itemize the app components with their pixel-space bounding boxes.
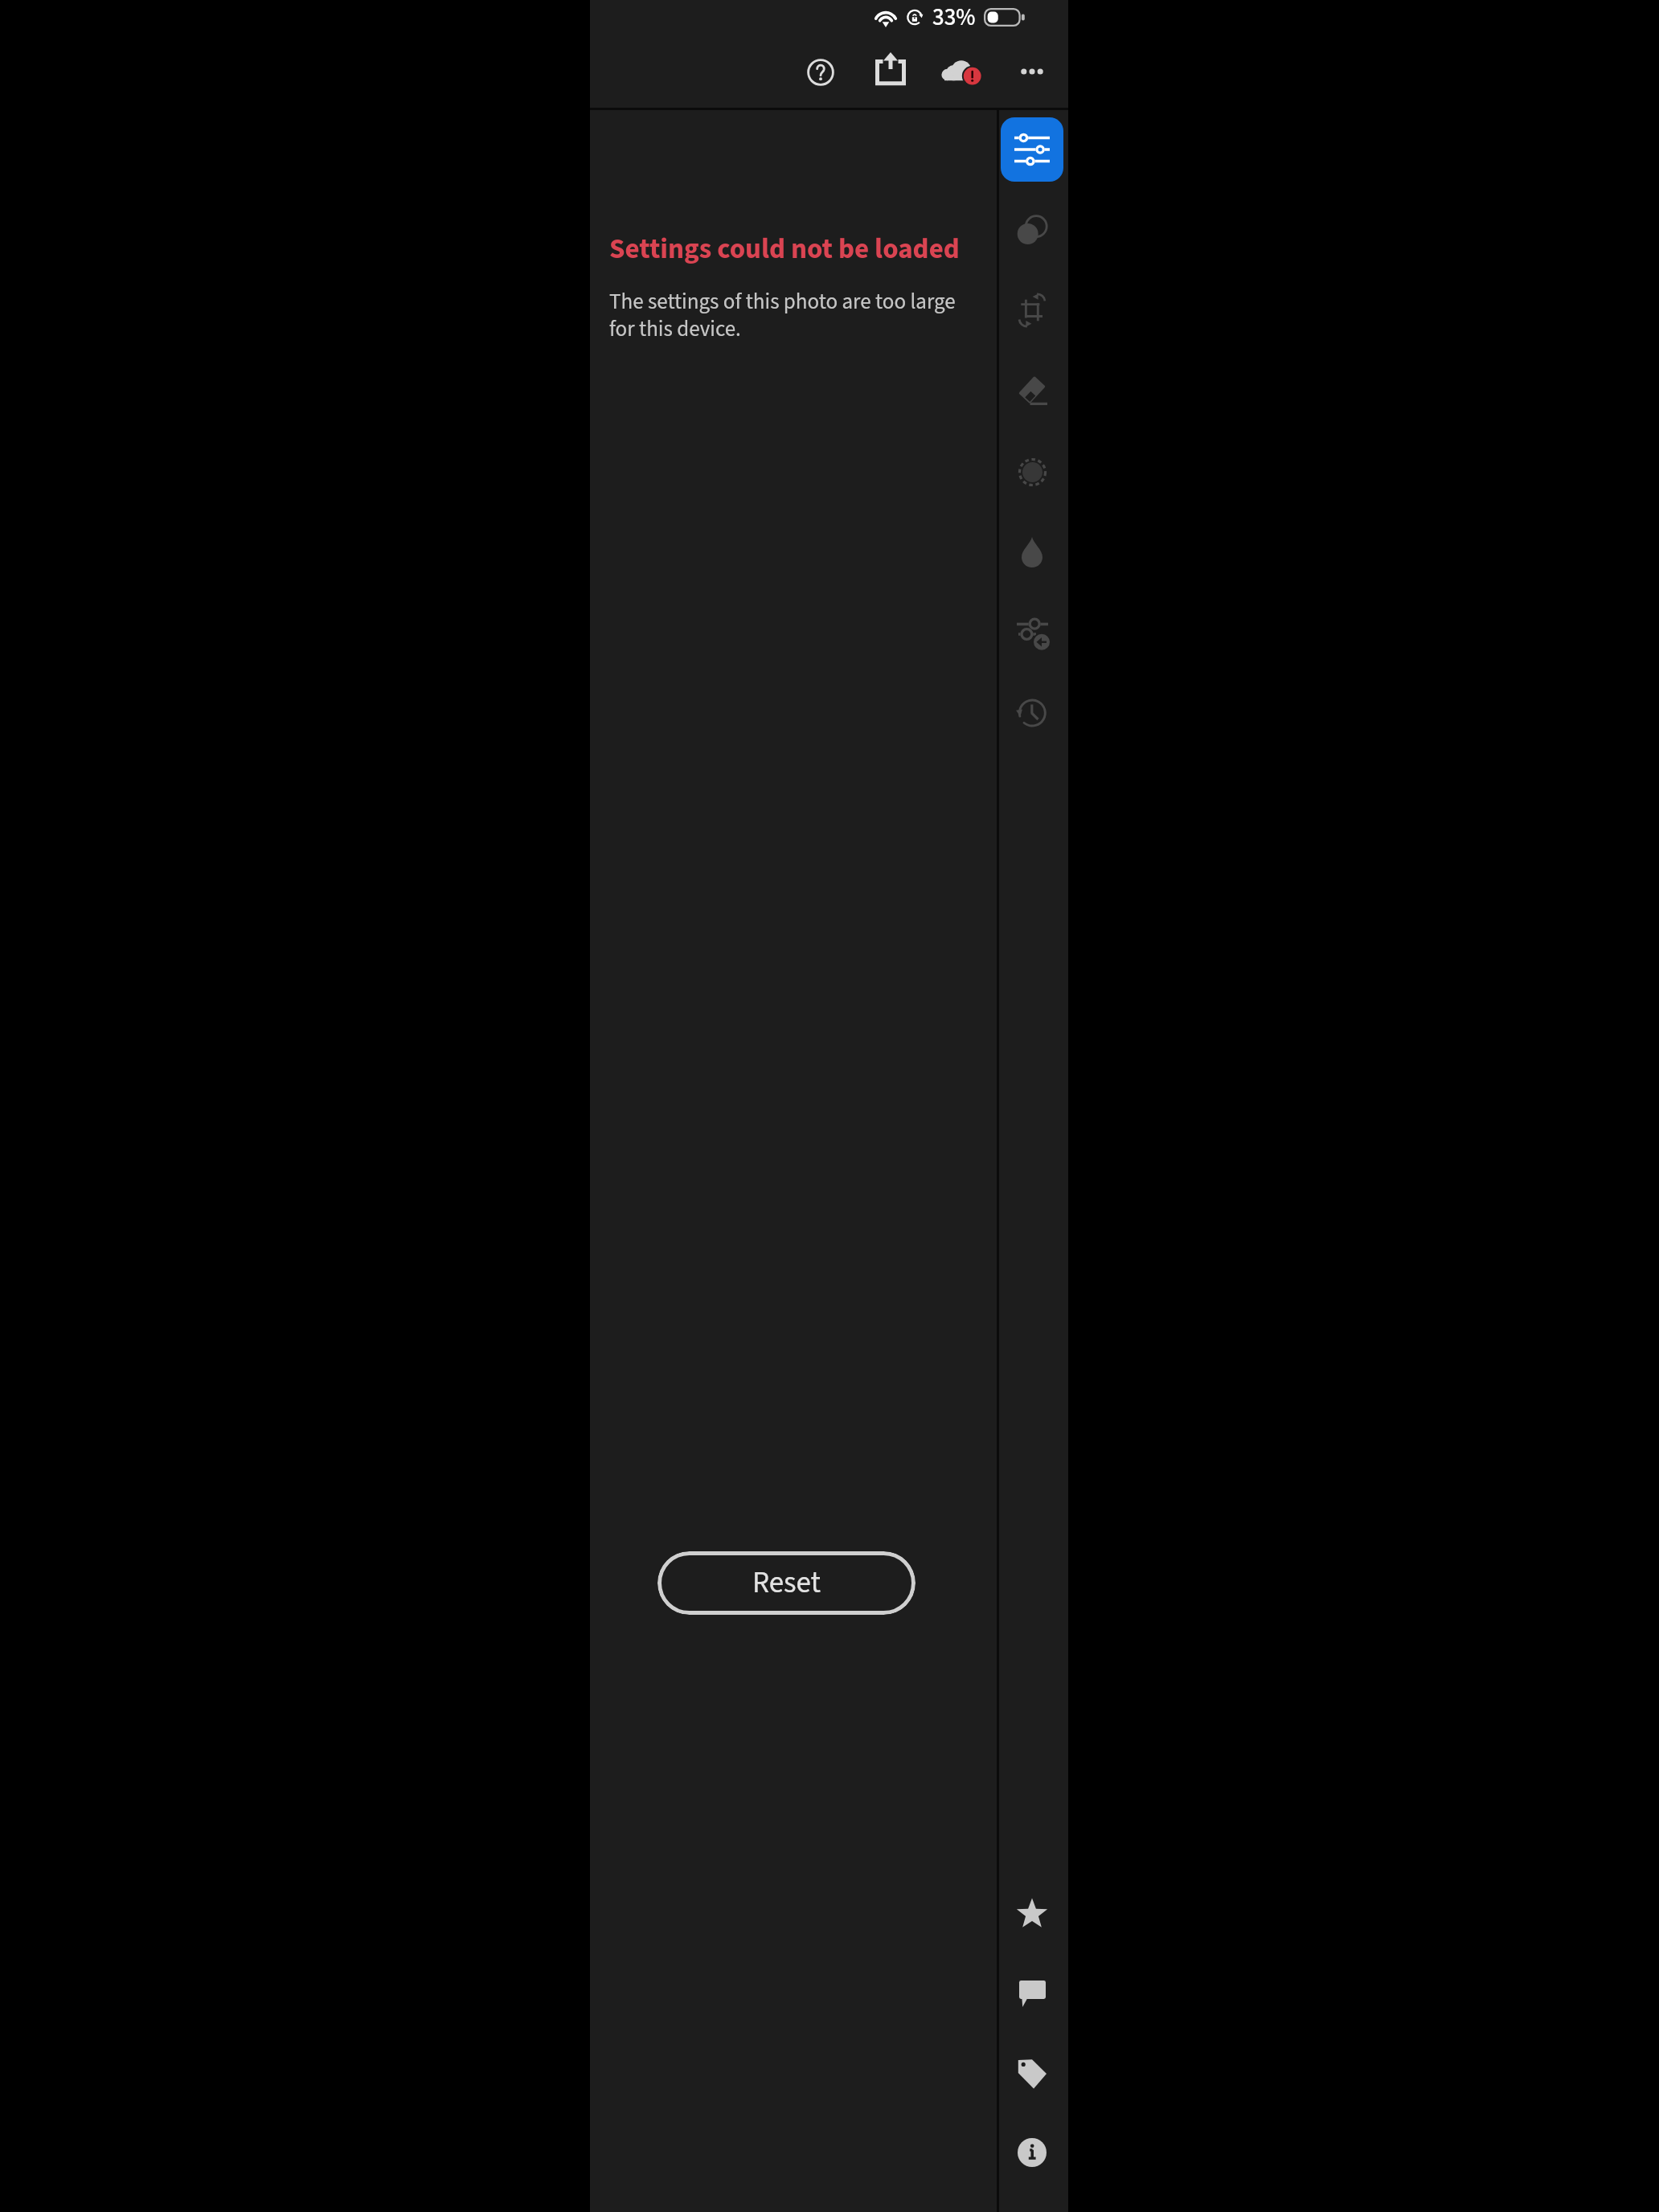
- button[interactable]: Comments: [1001, 1962, 1063, 2025]
- button[interactable]: Reset: [657, 1551, 916, 1615]
- staticText: Reset: [752, 1562, 821, 1604]
- button[interactable]: Healing: [1001, 359, 1063, 422]
- staticText: Settings could not be loaded: [609, 229, 960, 269]
- staticText: The settings of this photo are too large…: [609, 286, 956, 345]
- button[interactable]: More options: [1002, 42, 1062, 101]
- button[interactable]: Crop: [1001, 279, 1063, 342]
- button[interactable]: Color: [1001, 521, 1063, 584]
- staticText: 33%: [932, 1, 976, 34]
- button[interactable]: Keywords: [1001, 2042, 1063, 2104]
- button[interactable]: Denoise: [1001, 440, 1063, 503]
- button[interactable]: Share: [861, 39, 920, 99]
- button[interactable]: Masking: [1001, 199, 1063, 261]
- button[interactable]: Presets: [1001, 603, 1063, 666]
- button[interactable]: Sync error: [932, 42, 991, 101]
- button[interactable]: Rating: [1001, 1881, 1063, 1944]
- button[interactable]: Info: [1001, 2121, 1063, 2184]
- button[interactable]: Versions: [1001, 682, 1063, 744]
- button[interactable]: Help: [791, 43, 850, 102]
- button[interactable]: Edit: [1001, 117, 1063, 182]
